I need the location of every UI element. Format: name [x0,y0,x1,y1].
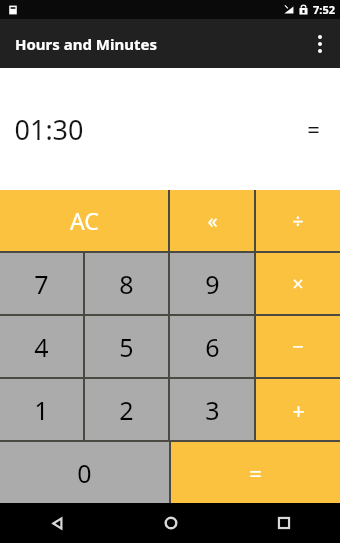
button[interactable]: − [256,316,340,377]
button[interactable]: + [256,379,340,440]
staticText: 01:30 [14,111,84,148]
staticText: × [292,270,304,297]
button[interactable]: AC [0,190,168,251]
button[interactable]: 5 [85,316,168,377]
staticText: − [292,333,304,360]
button[interactable]: ÷ [256,190,340,251]
staticText: AC [70,205,99,236]
button[interactable]: Home [114,503,227,543]
button[interactable]: More options [300,19,340,68]
button[interactable]: 2 [85,379,168,440]
staticText: 4 [34,330,49,364]
button[interactable]: 6 [170,316,254,377]
button[interactable]: 4 [0,316,83,377]
staticText: Hours and Minutes [15,34,157,54]
button[interactable]: 1 [0,379,83,440]
button[interactable]: × [256,253,340,314]
button[interactable]: = [171,442,340,503]
button[interactable]: 8 [85,253,168,314]
button[interactable]: « [170,190,254,251]
button[interactable]: 9 [170,253,254,314]
staticText: + [292,395,305,425]
staticText: 0 [77,456,92,490]
button[interactable]: 0 [0,442,169,503]
button[interactable]: Recent apps [227,503,340,543]
staticText: 7:52 [313,2,335,17]
staticText: = [249,458,262,488]
button[interactable]: 3 [170,379,254,440]
button[interactable]: 7 [0,253,83,314]
staticText: 3 [205,393,220,427]
staticText: 9 [205,267,220,301]
staticText: 1 [34,393,49,427]
staticText: 7 [34,267,49,301]
staticText: = [307,114,320,144]
staticText: 8 [119,267,134,301]
staticText: 6 [205,330,220,364]
staticText: 2 [119,393,134,427]
staticText: 5 [119,330,134,364]
staticText: « [207,207,218,234]
staticText: ÷ [292,207,304,234]
button[interactable]: Back [0,503,114,543]
